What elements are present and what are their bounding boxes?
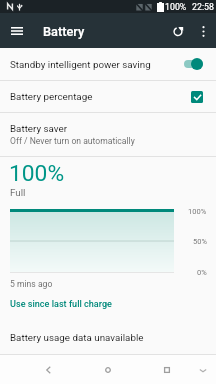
staticText: Use since last full charge: [10, 299, 112, 310]
staticText: Standby intelligent power saving: [10, 59, 184, 70]
staticText: 0%: [197, 268, 207, 277]
staticText: 5 mins ago: [10, 279, 53, 289]
staticText: 22:58: [192, 2, 214, 12]
button[interactable]: Standby intelligent power saving: [0, 48, 216, 80]
staticText: 100%: [165, 2, 187, 12]
button[interactable]: Home: [96, 358, 120, 382]
button[interactable]: Back: [36, 358, 60, 382]
staticText: Battery saver: [10, 123, 68, 134]
staticText: 50%: [193, 237, 207, 246]
button[interactable]: Recent apps: [155, 358, 179, 382]
staticText: Battery percentage: [10, 91, 191, 102]
button[interactable]: More options: [192, 20, 214, 42]
button[interactable]: Battery saver: [0, 113, 216, 156]
staticText: 100%: [9, 160, 65, 187]
button[interactable]: Battery usage data unavailable: [0, 320, 216, 354]
button[interactable]: Battery percentage: [0, 81, 216, 112]
staticText: Battery: [43, 24, 85, 39]
button[interactable]: Hide navigation bar: [193, 360, 213, 380]
button[interactable]: Navigation menu: [2, 16, 32, 46]
button[interactable]: Refresh: [165, 18, 191, 44]
staticText: 100%: [188, 207, 207, 216]
staticText: Full: [10, 187, 26, 198]
staticText: Off / Never turn on automatically: [10, 136, 135, 146]
button[interactable]: Use since last full charge: [0, 296, 216, 313]
staticText: Battery usage data unavailable: [10, 332, 144, 343]
